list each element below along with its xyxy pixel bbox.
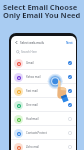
button[interactable]: Gmail (14, 56, 72, 70)
staticText: Gmail (26, 61, 34, 65)
staticText: Search Here (21, 50, 37, 54)
staticText: Fast mail (26, 89, 38, 93)
staticText: One mail (26, 103, 38, 107)
button[interactable]: Next (66, 41, 73, 45)
staticText: Hushmail (26, 117, 39, 121)
staticText: Select web-mails (20, 41, 44, 45)
button[interactable]: Hushmail (14, 112, 72, 126)
button[interactable]: Back (14, 40, 19, 45)
button[interactable]: Zoho mail (14, 140, 72, 150)
staticText: Next (66, 41, 73, 45)
button[interactable]: Search Here (16, 48, 76, 56)
button[interactable]: One mail (14, 98, 72, 112)
staticText: Select Email Choose (3, 2, 78, 12)
button[interactable]: Yahoo mail (14, 70, 72, 84)
staticText: Yahoo mail (26, 75, 41, 79)
button[interactable]: Fast mail (14, 84, 72, 98)
staticText: Only Email You Need (3, 10, 81, 20)
staticText: Zoho mail (26, 145, 40, 149)
button[interactable]: ContactsProtect (14, 126, 72, 140)
staticText: ContactsProtect (26, 131, 47, 135)
